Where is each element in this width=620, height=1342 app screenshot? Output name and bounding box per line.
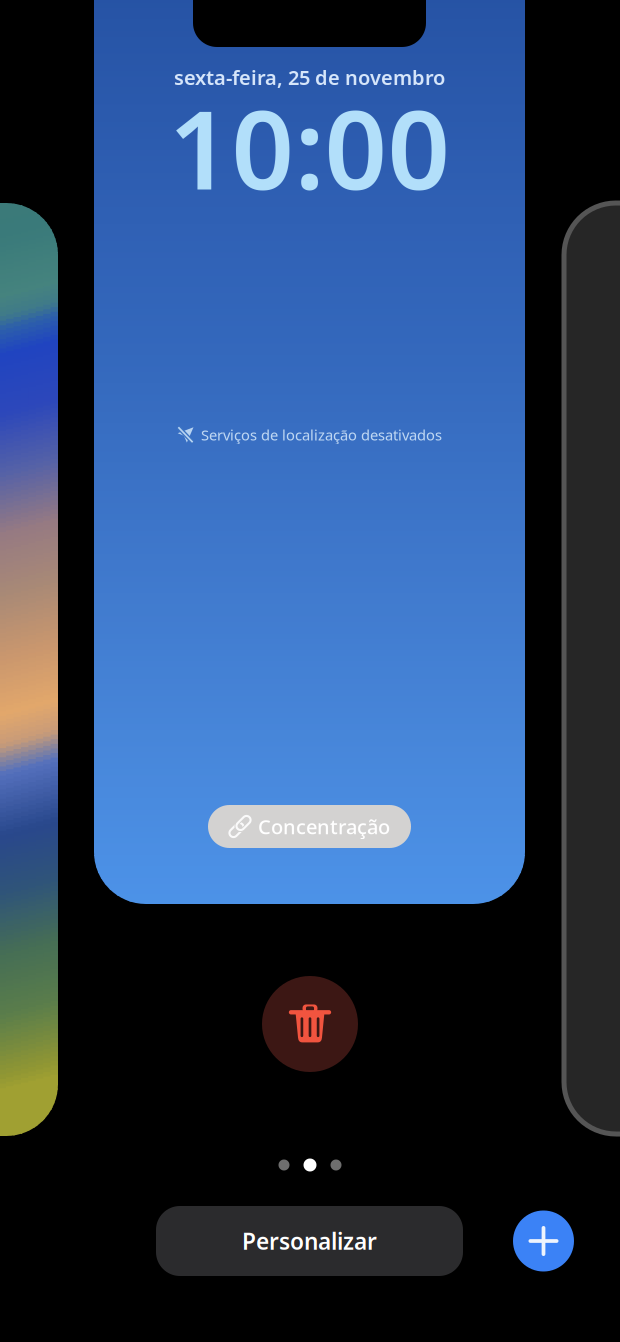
staticText: Concentração bbox=[258, 813, 390, 840]
button[interactable]: Tela de bloqueio anterior bbox=[0, 203, 58, 1136]
button[interactable]: Personalizar bbox=[156, 1206, 463, 1276]
staticText: Serviços de localização desativados bbox=[201, 425, 442, 444]
staticText: sexta-feira, 25 de novembro bbox=[174, 64, 445, 91]
button[interactable]: Tela de bloqueio azul selecionada bbox=[94, 0, 525, 904]
button[interactable]: Adicionar bbox=[513, 1210, 574, 1271]
staticText: Personalizar bbox=[242, 1226, 377, 1256]
button[interactable]: Adicionar nova tela de bloqueio bbox=[564, 203, 620, 1134]
staticText: 10:00 bbox=[168, 75, 450, 220]
button[interactable]: Excluir tela de bloqueio bbox=[262, 976, 358, 1072]
button[interactable]: Concentração bbox=[208, 805, 411, 848]
